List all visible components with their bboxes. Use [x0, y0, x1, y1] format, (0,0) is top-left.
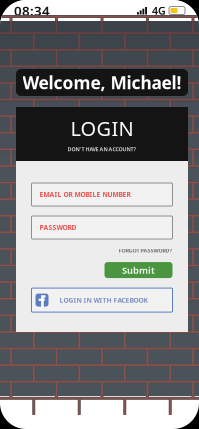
- staticText: EMAIL OR MOBILE NUMBER: [39, 190, 130, 199]
- staticText: FORGOT PASSWORD?: [118, 247, 172, 254]
- button[interactable]: Submit: [104, 262, 172, 278]
- button[interactable]: PASSWORD: [31, 216, 172, 239]
- staticText: PASSWORD: [39, 223, 76, 232]
- staticText: Submit: [122, 264, 155, 276]
- button[interactable]: DON'T HAVE AN ACCOUNT?: [61, 142, 142, 156]
- staticText: LOGIN: [70, 115, 133, 142]
- button[interactable]: LOGIN IN WITH FACEBOOK: [31, 288, 172, 312]
- staticText: Welcome, Michael!: [22, 71, 181, 94]
- staticText: 08:34: [14, 2, 50, 19]
- staticText: 4G: [152, 3, 166, 18]
- button[interactable]: FORGOT PASSWORD?: [118, 245, 172, 256]
- staticText: DON'T HAVE AN ACCOUNT?: [67, 146, 136, 153]
- button[interactable]: EMAIL OR MOBILE NUMBER: [31, 183, 172, 206]
- staticText: LOGIN IN WITH FACEBOOK: [59, 296, 147, 305]
